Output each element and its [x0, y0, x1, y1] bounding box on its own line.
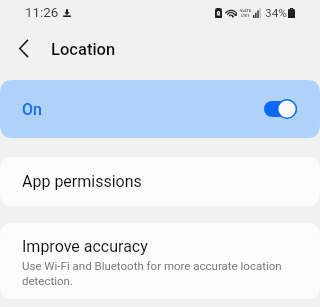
staticText: Improve accuracy [22, 237, 148, 256]
button[interactable]: On [0, 80, 320, 138]
button[interactable]: Back [10, 35, 37, 62]
staticText: VoLTE [240, 8, 251, 13]
staticText: LTE1 [241, 13, 250, 18]
staticText: 34% [265, 6, 287, 20]
staticText: App permissions [22, 172, 142, 191]
button[interactable]: Location on/off [264, 99, 297, 119]
button[interactable]: Improve accuracy [0, 223, 320, 299]
staticText: Use Wi-Fi and Bluetooth for more accurat… [22, 259, 294, 287]
staticText: 11:26 [25, 5, 59, 21]
staticText: Location [51, 40, 116, 59]
staticText: On [22, 100, 42, 119]
button[interactable]: App permissions [0, 157, 320, 206]
